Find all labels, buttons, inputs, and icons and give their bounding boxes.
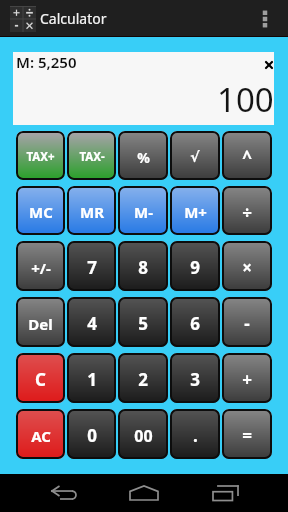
button[interactable]: ÷ [222, 186, 272, 235]
button[interactable]: Back [47, 474, 81, 512]
button[interactable]: Clear memory [263, 57, 274, 73]
button[interactable]: . [170, 409, 220, 459]
staticText: 4 [87, 312, 97, 335]
staticText: 8 [138, 256, 148, 279]
staticText: % [137, 148, 150, 167]
button[interactable]: 3 [170, 353, 220, 403]
staticText: × [242, 256, 252, 279]
button[interactable]: Home [127, 474, 161, 512]
button[interactable]: TAX+ [16, 131, 65, 180]
button[interactable]: MR [67, 186, 116, 235]
button[interactable]: 8 [118, 241, 168, 291]
staticText: M- [134, 202, 153, 222]
button[interactable]: 5 [118, 297, 168, 347]
button[interactable]: 2 [118, 353, 168, 403]
button[interactable]: 4 [67, 297, 116, 347]
button[interactable]: 6 [170, 297, 220, 347]
staticText: 9 [190, 256, 200, 279]
staticText: Del [28, 314, 53, 334]
button[interactable]: +/- [16, 241, 65, 291]
staticText: 3 [190, 368, 200, 391]
staticText: + [242, 368, 252, 391]
button[interactable]: 9 [170, 241, 220, 291]
button[interactable]: ^ [222, 131, 272, 180]
staticText: Calculator [40, 9, 107, 28]
staticText: 1 [87, 368, 97, 391]
staticText: = [242, 424, 252, 447]
button[interactable]: Recents [208, 474, 242, 512]
staticText: 5 [138, 312, 148, 335]
button[interactable]: % [118, 131, 168, 180]
staticText: ÷ [242, 201, 252, 224]
button[interactable]: More options [250, 4, 280, 34]
button[interactable]: TAX- [67, 131, 116, 180]
staticText: M+ [184, 202, 207, 222]
staticText: 6 [190, 312, 200, 335]
staticText: 0 [87, 424, 97, 447]
staticText: - [244, 312, 250, 335]
button[interactable]: M- [118, 186, 168, 235]
button[interactable]: Del [16, 297, 65, 347]
button[interactable]: M+ [170, 186, 220, 235]
staticText: TAX- [79, 149, 105, 165]
button[interactable]: 0 [67, 409, 116, 459]
staticText: +/- [31, 258, 51, 278]
staticText: 100 [217, 77, 274, 122]
staticText: M: 5,250 [16, 52, 77, 72]
staticText: C [35, 368, 46, 391]
button[interactable]: - [222, 297, 272, 347]
button[interactable]: + [222, 353, 272, 403]
staticText: √ [190, 149, 200, 165]
staticText: 7 [87, 256, 97, 279]
button[interactable]: √ [170, 131, 220, 180]
staticText: MC [29, 202, 53, 222]
button[interactable]: × [222, 241, 272, 291]
staticText: MR [80, 202, 104, 222]
button[interactable]: 00 [118, 409, 168, 459]
staticText: 2 [138, 368, 148, 391]
staticText: AC [31, 426, 51, 446]
staticText: . [193, 424, 198, 447]
button[interactable]: 7 [67, 241, 116, 291]
staticText: 00 [134, 425, 153, 447]
button[interactable]: MC [16, 186, 65, 235]
staticText: ^ [242, 146, 252, 169]
staticText: TAX+ [26, 149, 55, 165]
button[interactable]: AC [16, 409, 65, 459]
button[interactable]: 1 [67, 353, 116, 403]
button[interactable]: = [222, 409, 272, 459]
button[interactable]: C [16, 353, 65, 403]
